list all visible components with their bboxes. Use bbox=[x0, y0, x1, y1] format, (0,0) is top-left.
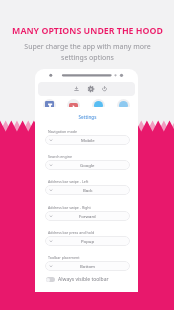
button[interactable]: Address bar swipe - Left bbox=[40, 179, 135, 195]
staticText: Always visible toolbar bbox=[58, 276, 109, 283]
button[interactable]: Address bar press and hold bbox=[40, 230, 135, 246]
button[interactable]: Shortcut bbox=[43, 99, 56, 112]
button[interactable]: Shortcut bbox=[117, 99, 130, 112]
staticText: Settings bbox=[40, 114, 135, 120]
staticText: Address bar swipe - Right bbox=[48, 205, 91, 210]
staticText: Toolbar placement bbox=[48, 255, 80, 260]
button[interactable]: Shortcut bbox=[67, 99, 80, 112]
staticText: Mobile bbox=[81, 137, 95, 143]
button[interactable]: Downloads bbox=[72, 84, 81, 93]
button[interactable]: Toolbar placement bbox=[40, 255, 135, 271]
staticText: Address bar swipe - Left bbox=[48, 179, 89, 184]
staticText: Address bar press and hold bbox=[48, 230, 95, 235]
button[interactable]: Shortcut bbox=[92, 99, 105, 112]
button[interactable]: Always visible toolbar bbox=[46, 276, 135, 283]
staticText: Google bbox=[80, 162, 95, 168]
staticText: Popup bbox=[81, 238, 95, 244]
staticText: MANY OPTIONS UNDER THE HOOD bbox=[12, 25, 163, 37]
staticText: Forward bbox=[79, 213, 96, 219]
button[interactable]: Address bar swipe - Right bbox=[40, 205, 135, 221]
staticText: Search engine bbox=[48, 154, 72, 159]
button[interactable]: Search engine bbox=[40, 154, 135, 170]
staticText: Super charge the app with many more sett… bbox=[24, 42, 151, 62]
button[interactable]: Settings bbox=[86, 84, 95, 93]
button[interactable]: Power bbox=[100, 84, 109, 93]
staticText: Bottom bbox=[80, 263, 96, 269]
staticText: Back bbox=[83, 187, 93, 193]
staticText: Navigation mode bbox=[48, 129, 78, 134]
button[interactable]: Navigation mode bbox=[40, 129, 135, 145]
